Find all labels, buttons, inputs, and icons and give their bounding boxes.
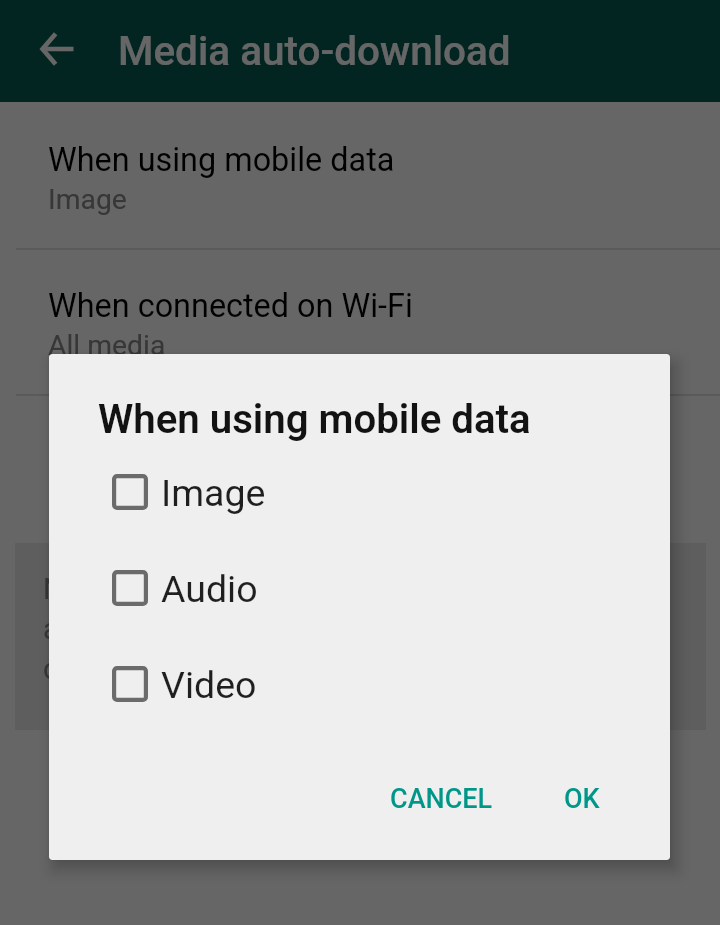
button[interactable]: When connected on Wi-Fi (0, 248, 720, 394)
button[interactable]: Video (49, 636, 670, 732)
staticText: When roaming (48, 433, 257, 471)
staticText: All media (48, 329, 166, 362)
staticText: Image (161, 471, 266, 515)
button[interactable]: When using mobile data (0, 102, 720, 248)
staticText: When connected on Wi-Fi (48, 287, 413, 325)
staticText: Audio (161, 567, 258, 611)
staticText: CANCEL (390, 783, 493, 815)
button[interactable]: Audio (49, 540, 670, 636)
button[interactable]: Image (49, 444, 670, 540)
button[interactable]: Back (24, 16, 90, 82)
button[interactable]: OK (548, 769, 616, 829)
staticText: Image (48, 183, 127, 216)
staticText: OK (564, 783, 600, 815)
staticText: Video (161, 663, 257, 707)
button[interactable]: When roaming (0, 394, 720, 540)
staticText: No media (48, 475, 170, 508)
button[interactable]: CANCEL (374, 769, 509, 829)
staticText: Media auto-download (118, 27, 511, 74)
staticText: When using mobile data (48, 141, 395, 179)
staticText: Note: Voice messages are always automati… (43, 572, 673, 686)
staticText: When using mobile data (98, 396, 531, 443)
